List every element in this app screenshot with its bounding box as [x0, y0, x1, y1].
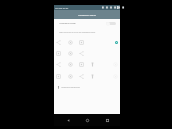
button[interactable]: Icon 1_1 — [65, 48, 76, 59]
staticText: Navigation panel — [78, 14, 96, 17]
button[interactable]: Icon 0_1 — [65, 37, 76, 48]
button[interactable]: Icon 3_3 — [87, 71, 98, 82]
button[interactable]: Icon 2_2 — [76, 59, 87, 70]
button[interactable]: Icon 2_1 — [65, 59, 76, 70]
button[interactable]: Icon 1_0 — [53, 48, 64, 59]
button[interactable]: Navigation panel — [54, 19, 120, 28]
button[interactable]: Icon 0_2 — [76, 37, 87, 48]
button[interactable]: Icon 2_0 — [53, 59, 64, 70]
staticText: Notification preferences — [61, 86, 81, 88]
button[interactable]: Icon 2_5 — [110, 59, 121, 70]
button[interactable]: Icon 3_5 — [110, 71, 121, 82]
button[interactable]: Icon 3_2 — [76, 71, 87, 82]
staticText: Select the icons to use in the navigatio… — [59, 31, 96, 33]
button[interactable]: Back — [62, 116, 74, 125]
button[interactable]: Icon 2_3 — [87, 59, 98, 70]
button[interactable]: Notification preferences — [54, 84, 120, 90]
button[interactable]: Icon 0_0 — [53, 37, 64, 48]
button[interactable]: Selected icon — [112, 38, 120, 46]
button[interactable]: Recents — [101, 116, 113, 125]
button[interactable]: Icon 3_0 — [53, 71, 64, 82]
button[interactable]: Home — [81, 116, 93, 125]
staticText: SDK built for x86 — [55, 7, 69, 9]
button[interactable]: Icon 1_2 — [76, 48, 87, 59]
button[interactable]: Navigation panel — [54, 10, 120, 20]
button[interactable]: Icon 3_1 — [65, 71, 76, 82]
staticText: Navigation panel — [59, 22, 76, 25]
